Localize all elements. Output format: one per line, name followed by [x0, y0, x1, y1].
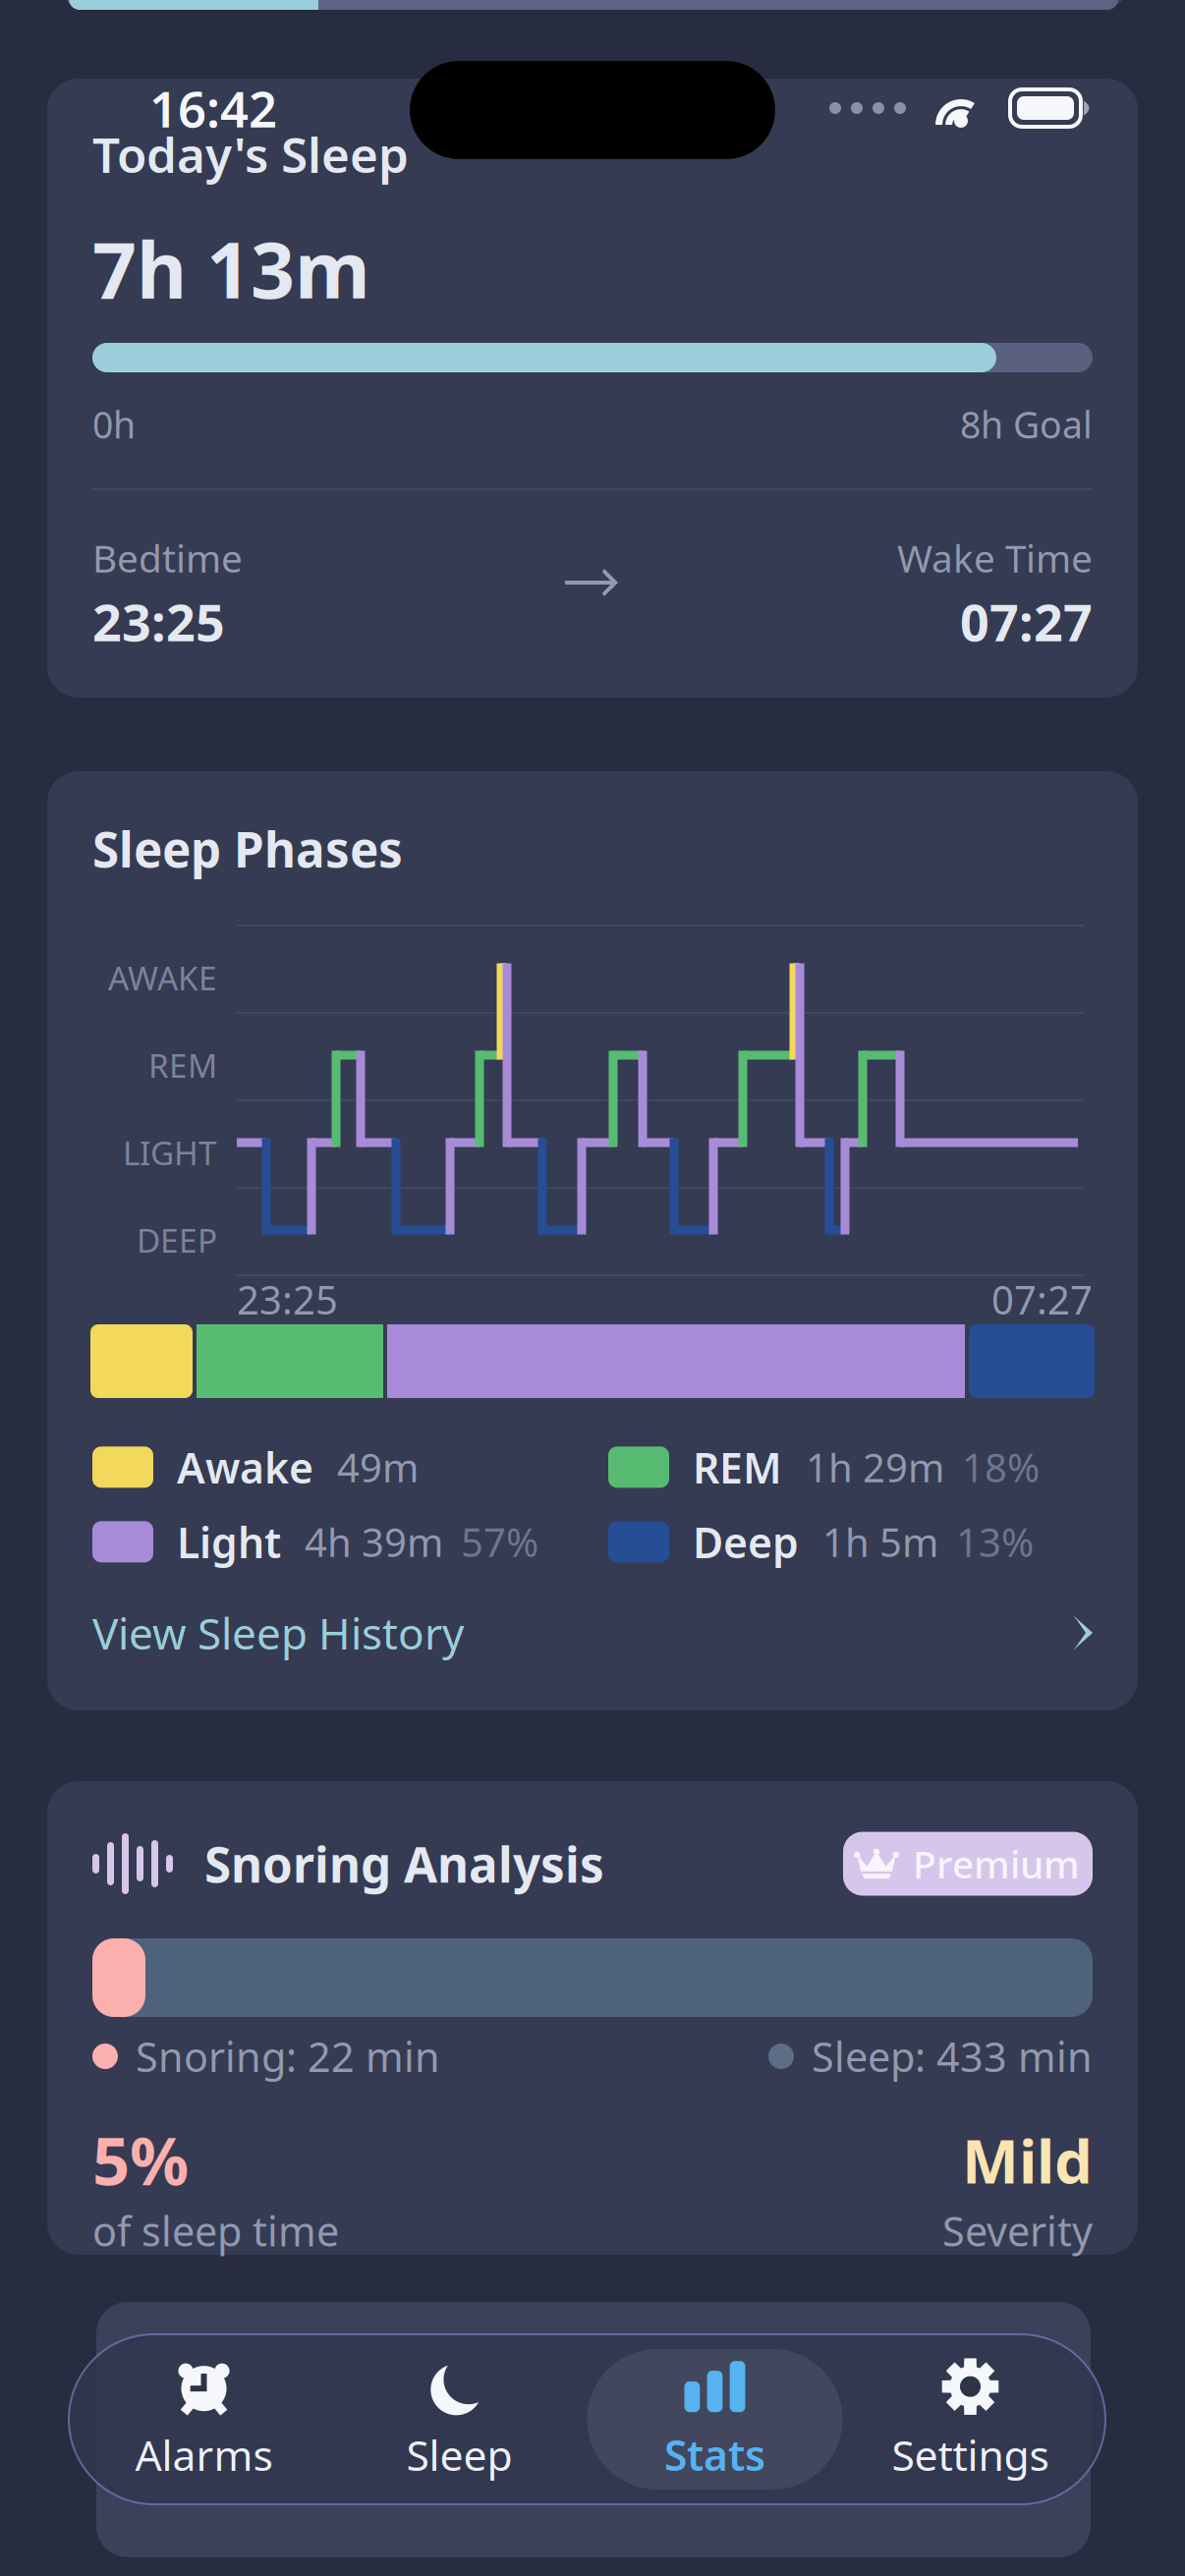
staticText: Today's Sleep	[92, 122, 409, 186]
staticText: DEEP	[137, 1218, 217, 1262]
staticText: REM	[693, 1439, 782, 1495]
staticText: Bedtime	[92, 532, 243, 583]
staticText: Snoring: 22 min	[136, 2029, 440, 2083]
staticText: 7h 13m	[92, 217, 370, 320]
staticText: Mild	[962, 2120, 1093, 2200]
staticText: View Sleep History	[92, 1604, 464, 1662]
staticText: Snoring Analysis	[204, 1831, 604, 1896]
staticText: 0h	[92, 400, 136, 449]
staticText: REM	[148, 1043, 217, 1087]
staticText: of sleep time	[92, 2204, 339, 2258]
staticText: 5%	[92, 2116, 189, 2203]
button[interactable]: Alarms	[76, 2349, 332, 2490]
staticText: 13%	[956, 1516, 1034, 1568]
button[interactable]: Settings	[843, 2349, 1098, 2490]
button[interactable]: View Sleep History	[92, 1605, 1093, 1660]
staticText: Alarms	[135, 2427, 273, 2483]
staticText: 23:25	[237, 1273, 338, 1325]
staticText: Light	[177, 1514, 281, 1570]
staticText: 1h 5m	[822, 1516, 938, 1568]
staticText: Sleep: 433 min	[812, 2029, 1093, 2083]
staticText: Severity	[942, 2204, 1093, 2258]
staticText: 07:27	[960, 588, 1093, 655]
staticText: 18%	[962, 1441, 1040, 1493]
button[interactable]: Stats	[587, 2349, 843, 2490]
staticText: Sleep Phases	[92, 816, 403, 881]
staticText: 4h 39m	[305, 1516, 443, 1568]
staticText: Sleep	[406, 2427, 512, 2483]
staticText: Awake	[177, 1439, 313, 1495]
staticText: AWAKE	[108, 956, 217, 999]
button[interactable]: Premium	[843, 1832, 1093, 1896]
staticText: Settings	[892, 2427, 1049, 2483]
staticText: 1h 29m	[806, 1441, 944, 1493]
staticText: Premium	[913, 1838, 1080, 1889]
staticText: Deep	[693, 1514, 799, 1570]
staticText: Wake Time	[897, 532, 1093, 583]
staticText: Stats	[664, 2427, 765, 2483]
staticText: 07:27	[991, 1273, 1093, 1325]
button[interactable]: Sleep	[332, 2349, 587, 2490]
staticText: 23:25	[92, 588, 225, 655]
staticText: 16:42	[149, 75, 277, 141]
staticText: 49m	[337, 1441, 419, 1493]
staticText: 8h Goal	[960, 400, 1093, 449]
staticText: 57%	[461, 1516, 538, 1568]
staticText: LIGHT	[123, 1131, 217, 1174]
